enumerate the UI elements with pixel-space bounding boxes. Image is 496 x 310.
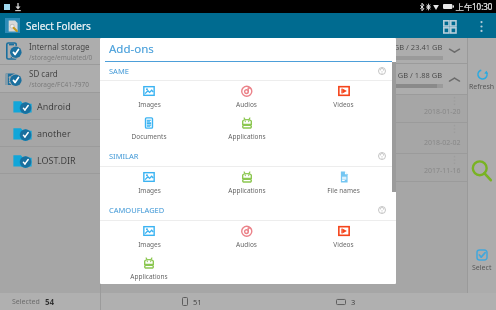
button[interactable]: More options bbox=[472, 17, 490, 35]
button[interactable]: Select bbox=[468, 249, 496, 273]
staticText: Applications bbox=[228, 186, 266, 195]
staticText: /storage/emulated/0 bbox=[29, 53, 93, 62]
staticText: Images bbox=[138, 186, 161, 195]
staticText: LOST.DIR bbox=[37, 154, 76, 166]
staticText: Refresh bbox=[469, 82, 495, 92]
staticText: Images bbox=[138, 100, 161, 109]
button[interactable]: 2017-11-16 bbox=[100, 154, 467, 181]
staticText: /storage/FC41-7970 bbox=[29, 80, 89, 89]
button[interactable]: 1.79 GB / 1.88 GB bbox=[100, 64, 467, 94]
button[interactable]: Applications bbox=[198, 167, 295, 199]
staticText: SIMILAR bbox=[109, 151, 139, 161]
button[interactable]: Documents bbox=[100, 113, 198, 145]
staticText: Select bbox=[472, 263, 492, 273]
button[interactable]: LOST.DIR bbox=[0, 147, 100, 173]
staticText: Videos bbox=[333, 100, 354, 109]
button[interactable]: Applications bbox=[198, 113, 295, 145]
button[interactable]: File names bbox=[295, 167, 392, 199]
staticText: Internal storage bbox=[29, 41, 90, 52]
staticText: another bbox=[37, 127, 71, 139]
button[interactable]: Images bbox=[100, 221, 198, 253]
button[interactable]: Videos bbox=[295, 221, 392, 253]
staticText: Applications bbox=[228, 132, 266, 141]
staticText: Add-ons bbox=[109, 41, 154, 57]
staticText: 1.87 GB / 23.41 GB bbox=[377, 42, 443, 52]
staticText: Audios bbox=[236, 100, 257, 109]
staticText: 2017-11-16 bbox=[424, 166, 461, 176]
button[interactable]: another bbox=[0, 120, 100, 146]
button[interactable]: Search bbox=[469, 158, 495, 184]
button[interactable]: Grid view bbox=[438, 15, 460, 37]
button[interactable]: Audios bbox=[198, 81, 295, 113]
staticText: Android bbox=[37, 100, 71, 112]
staticText: 2018-01-20 bbox=[424, 107, 461, 117]
button[interactable]: Images bbox=[100, 81, 198, 113]
staticText: 54 bbox=[45, 296, 55, 307]
button[interactable]: Refresh bbox=[468, 69, 496, 92]
staticText: CAMOUFLAGED bbox=[109, 205, 165, 215]
staticText: Audios bbox=[236, 240, 257, 249]
button[interactable]: 2018-02-02 bbox=[100, 123, 467, 153]
staticText: 2018-02-02 bbox=[424, 138, 461, 148]
button[interactable]: Applications bbox=[100, 253, 198, 284]
staticText: 1.79 GB / 1.88 GB bbox=[381, 70, 443, 80]
staticText: Images bbox=[138, 240, 161, 249]
staticText: Applications bbox=[130, 272, 168, 281]
staticText: Selected bbox=[12, 297, 40, 307]
staticText: 51 bbox=[193, 297, 202, 307]
button[interactable]: Audios bbox=[198, 221, 295, 253]
button[interactable]: Internal storage bbox=[0, 38, 100, 64]
button[interactable]: 2018-01-20 bbox=[100, 95, 467, 122]
staticText: 3 bbox=[351, 297, 356, 307]
button[interactable]: 1.87 GB / 23.41 GB bbox=[100, 38, 467, 63]
staticText: Select Folders bbox=[26, 19, 91, 33]
button[interactable]: Images bbox=[100, 167, 198, 199]
staticText: SD card bbox=[29, 68, 58, 79]
staticText: 上午10:30 bbox=[456, 1, 493, 12]
staticText: Documents bbox=[131, 132, 167, 141]
button[interactable]: SD card bbox=[0, 65, 100, 92]
staticText: Videos bbox=[333, 240, 354, 249]
staticText: SAME bbox=[109, 66, 129, 76]
button[interactable]: Videos bbox=[295, 81, 392, 113]
staticText: File names bbox=[327, 186, 360, 195]
button[interactable]: Android bbox=[0, 93, 100, 119]
